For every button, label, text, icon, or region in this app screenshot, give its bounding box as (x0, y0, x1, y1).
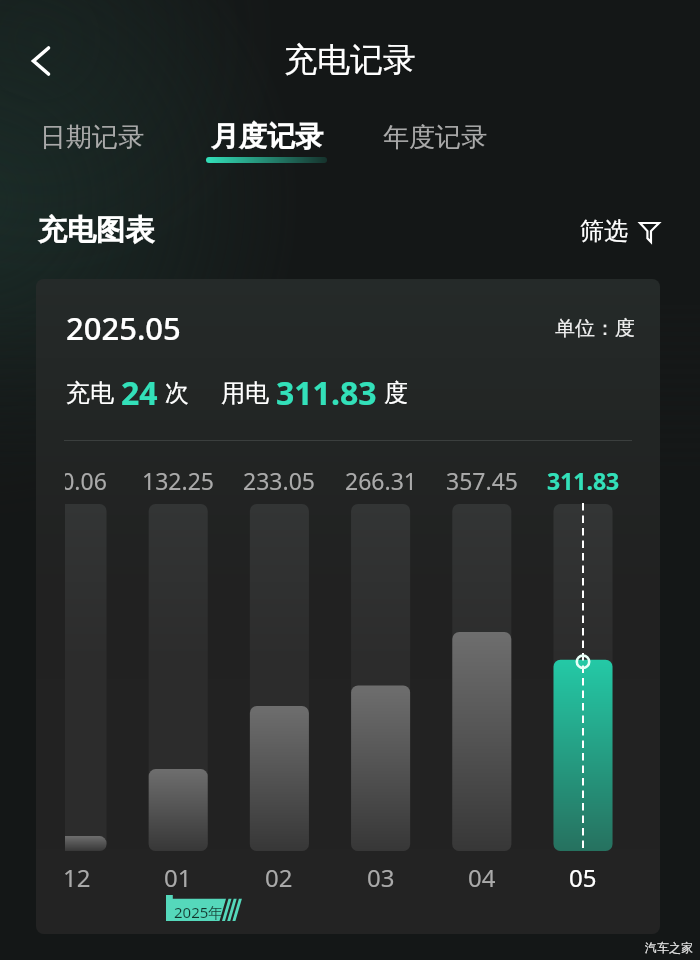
staticText: 311.83 (276, 371, 377, 415)
staticText: 233.05 (243, 465, 315, 496)
staticText: 04 (468, 861, 496, 894)
button[interactable]: 年度记录 (383, 121, 487, 154)
button[interactable]: 日期记录 (40, 121, 144, 154)
staticText: 年度记录 (383, 121, 487, 154)
staticText: 266.31 (345, 465, 417, 496)
staticText: 01 (164, 861, 192, 894)
staticText: 度 (384, 378, 408, 408)
staticText: 12 (65, 861, 91, 894)
staticText: 03 (367, 861, 395, 894)
staticText: 02 (265, 861, 293, 894)
staticText: 筛选 (580, 216, 628, 246)
staticText: 充电记录 (284, 39, 416, 81)
staticText: 05 (569, 861, 597, 894)
staticText: 汽车之家 (645, 940, 693, 955)
staticText: 单位：度 (555, 316, 635, 341)
staticText: 357.45 (446, 465, 518, 496)
staticText: 20.06 (65, 465, 107, 496)
staticText: 24 (121, 371, 158, 415)
staticText: 日期记录 (40, 121, 144, 154)
staticText: 月度记录 (211, 119, 323, 154)
button[interactable]: 筛选 (580, 216, 660, 246)
staticText: 2025年 (174, 902, 224, 922)
staticText: 2025.05 (66, 307, 181, 349)
staticText: 次 (165, 378, 189, 408)
staticText: 充电 (66, 378, 114, 408)
staticText: 132.25 (142, 465, 214, 496)
button[interactable]: Back (18, 38, 64, 84)
button[interactable]: 月度记录 (206, 119, 327, 163)
staticText: 311.83 (547, 465, 620, 496)
button[interactable]: 充电图表 (38, 212, 154, 249)
staticText: 用电 (221, 378, 269, 408)
